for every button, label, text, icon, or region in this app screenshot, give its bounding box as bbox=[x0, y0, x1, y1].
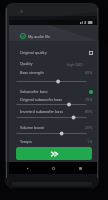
staticText: Original quality bbox=[20, 50, 47, 55]
button[interactable] bbox=[15, 115, 88, 120]
staticText: Tempo bbox=[20, 139, 32, 144]
button[interactable]: Original subwoofer bass bbox=[9, 96, 97, 103]
staticText: Original subwoofer bass bbox=[20, 97, 63, 102]
button[interactable]: Quality bbox=[9, 60, 97, 67]
staticText: 20% bbox=[85, 125, 93, 130]
button[interactable]: Volume boost bbox=[9, 124, 97, 131]
staticText: Inverted subwoofer bass bbox=[20, 109, 63, 114]
staticText: 70% bbox=[85, 97, 93, 102]
staticText: My audio file bbox=[28, 34, 51, 39]
button[interactable] bbox=[15, 102, 88, 107]
button[interactable]: Subwoofer bass bbox=[9, 88, 97, 95]
button[interactable]: Tempo bbox=[9, 138, 97, 145]
button[interactable]: Inverted subwoofer bass bbox=[9, 108, 97, 115]
button[interactable]: Start processing bbox=[16, 147, 92, 160]
staticText: Subwoofer bass bbox=[20, 89, 48, 94]
button[interactable]: Back bbox=[18, 162, 36, 174]
button[interactable] bbox=[15, 79, 88, 84]
button[interactable]: Recent apps bbox=[71, 162, 89, 174]
button[interactable]: Bass strength bbox=[9, 69, 97, 76]
staticText: Bass strength bbox=[20, 70, 44, 75]
staticText: Volume boost bbox=[20, 125, 44, 130]
staticText: high (320) bbox=[67, 62, 83, 66]
staticText: Quality bbox=[20, 61, 33, 66]
button[interactable] bbox=[15, 131, 88, 136]
button[interactable]: My audio file bbox=[9, 25, 97, 41]
button[interactable]: Original quality bbox=[9, 49, 97, 56]
button[interactable]: Home bbox=[44, 162, 62, 174]
staticText: 60% bbox=[85, 70, 93, 75]
staticText: 1.0 bbox=[87, 139, 93, 144]
staticText: 80% bbox=[85, 109, 93, 114]
